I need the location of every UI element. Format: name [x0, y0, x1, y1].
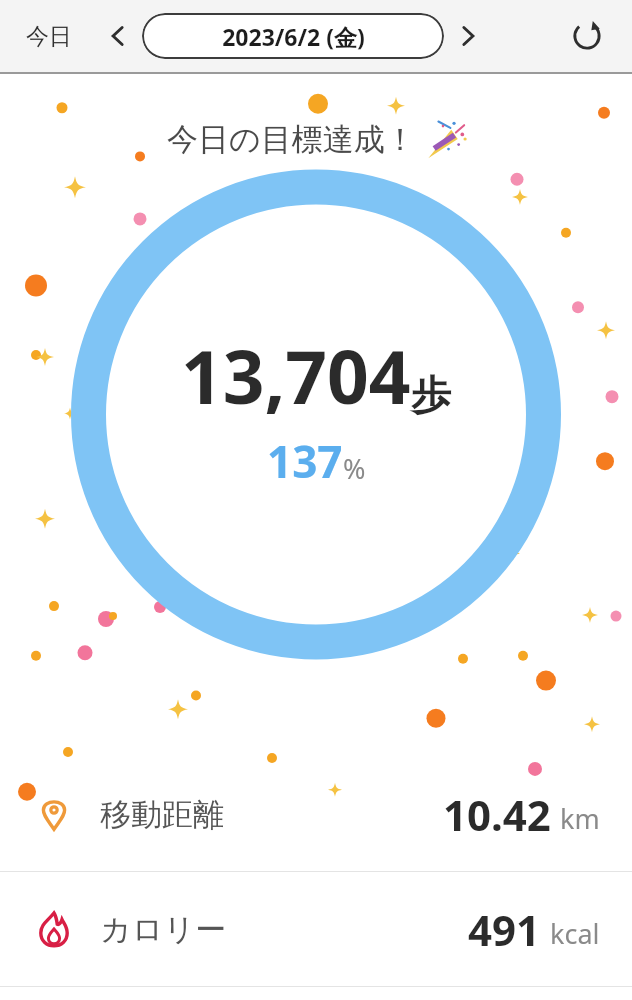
staticText: kcal: [550, 915, 600, 952]
button[interactable]: Next day: [448, 16, 488, 56]
button[interactable]: 今日: [22, 14, 76, 59]
button[interactable]: Refresh: [564, 13, 610, 59]
button[interactable]: カロリー: [0, 872, 632, 986]
staticText: 137: [267, 431, 343, 491]
staticText: 2023/6/2 (金): [222, 21, 365, 52]
staticText: 今日: [26, 22, 72, 51]
staticText: 10.42: [443, 786, 551, 843]
staticText: 今日の目標達成！: [167, 120, 416, 159]
button[interactable]: Previous day: [98, 16, 138, 56]
staticText: 歩: [411, 370, 451, 420]
staticText: %: [343, 450, 366, 487]
button[interactable]: 移動距離: [0, 757, 632, 871]
staticText: 移動距離: [100, 795, 224, 834]
staticText: 491: [468, 901, 541, 958]
button[interactable]: 2023/6/2 (金): [142, 13, 444, 59]
staticText: km: [560, 800, 600, 837]
staticText: カロリー: [100, 910, 227, 949]
staticText: 13,704: [181, 326, 411, 425]
